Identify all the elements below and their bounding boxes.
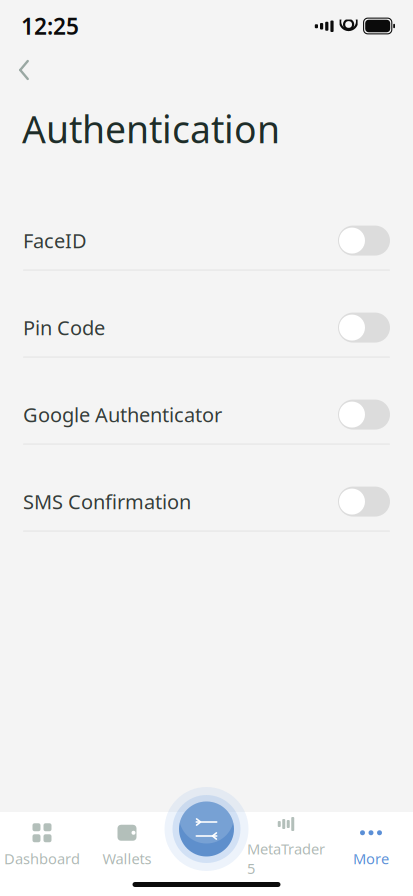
staticText: MetaTrader 5 [247,839,325,878]
button[interactable]: FaceID [0,212,413,299]
button[interactable]: Pin Code [0,299,413,386]
button[interactable]: Back [2,50,46,90]
staticText: SMS Confirmation [23,488,191,515]
button[interactable]: Google Authenticator [0,386,413,473]
staticText: Pin Code [23,314,105,341]
staticText: Wallets [102,849,151,868]
staticText: Dashboard [4,849,80,868]
staticText: Google Authenticator [23,401,222,428]
staticText: More [353,849,389,868]
staticText: 12:25 [21,11,79,41]
button[interactable]: MetaTrader 5 [243,820,328,870]
staticText: Authentication [22,104,280,154]
button[interactable]: More [328,820,413,870]
button[interactable]: SMS Confirmation [0,473,413,560]
button[interactable]: Exchange [161,784,251,874]
staticText: FaceID [23,227,87,254]
button[interactable]: Wallets [84,820,169,870]
button[interactable]: Dashboard [0,820,84,870]
